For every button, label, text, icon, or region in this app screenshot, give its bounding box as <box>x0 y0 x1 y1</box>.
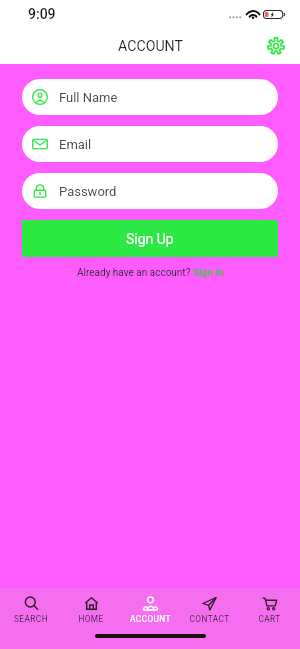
staticText: ACCOUNT <box>130 614 171 624</box>
staticText: Already have an account? <box>77 267 193 279</box>
staticText: Sign Up <box>126 231 174 247</box>
staticText: 9:09 <box>28 6 56 22</box>
button[interactable]: Password <box>22 173 278 209</box>
staticText: Password <box>59 184 117 199</box>
staticText: CONTACT <box>189 614 230 624</box>
button[interactable]: CART <box>241 588 297 649</box>
button[interactable]: Sign in <box>193 267 224 279</box>
staticText: Full Name <box>59 90 118 105</box>
button[interactable]: CONTACT <box>181 588 237 649</box>
button[interactable]: Email <box>22 126 278 162</box>
button[interactable]: Sign Up <box>22 220 278 257</box>
staticText: SEARCH <box>14 614 48 624</box>
button[interactable]: Settings <box>264 34 288 58</box>
button[interactable]: SEARCH <box>3 588 59 649</box>
staticText: ACCOUNT <box>118 38 183 55</box>
button[interactable]: HOME <box>63 588 119 649</box>
button[interactable]: ACCOUNT <box>122 588 178 649</box>
staticText: Email <box>59 137 92 152</box>
button[interactable]: Full Name <box>22 79 278 115</box>
staticText: CART <box>258 614 281 624</box>
staticText: Sign in <box>193 267 224 279</box>
staticText: HOME <box>78 614 104 624</box>
